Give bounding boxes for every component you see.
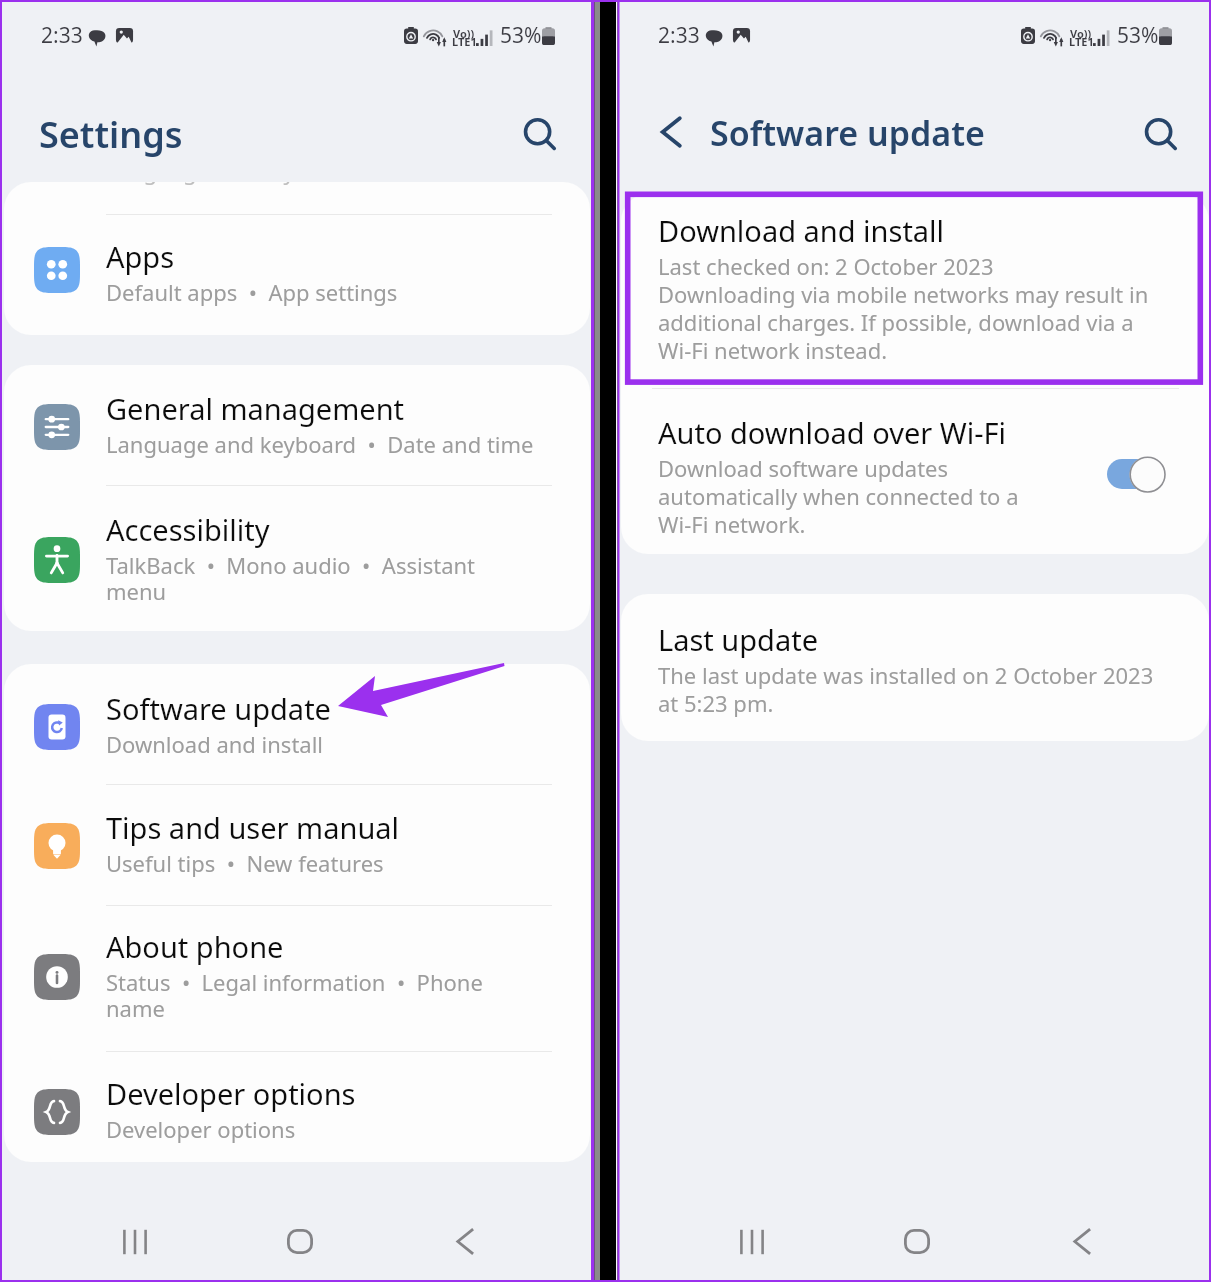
button[interactable]: [619, 387, 1209, 554]
staticText: 2:33: [658, 21, 700, 50]
staticText: Software update: [710, 110, 985, 156]
staticText: Apps: [106, 237, 175, 276]
staticText: Download and install: [658, 211, 945, 250]
staticText: The last update was installed on 2 Octob…: [658, 660, 1154, 718]
button[interactable]: Auto download over Wi-Fi toggle: [1103, 452, 1171, 498]
staticText: Useful tips • New features: [106, 848, 384, 878]
button[interactable]: [619, 194, 1209, 387]
staticText: 2:33: [41, 21, 83, 50]
button[interactable]: [621, 594, 1209, 741]
button[interactable]: Search: [1136, 110, 1188, 162]
staticText: LTE1: [452, 34, 477, 49]
button[interactable]: [2, 664, 592, 784]
staticText: Status • Legal information • Phone name: [106, 967, 483, 1024]
button[interactable]: Home: [266, 1195, 334, 1282]
button[interactable]: Search: [515, 110, 567, 162]
staticText: Developer options: [106, 1074, 356, 1113]
staticText: Accessibility: [106, 510, 270, 549]
staticText: LTE1: [1069, 34, 1094, 49]
button[interactable]: Back: [645, 106, 697, 158]
staticText: 53%: [500, 21, 542, 50]
staticText: Download software updates automatically …: [658, 453, 1019, 539]
staticText: Download and install: [106, 729, 324, 759]
staticText: Language and keyboard • Date and time: [106, 182, 534, 186]
button[interactable]: Recent apps: [101, 1195, 169, 1282]
button[interactable]: [2, 365, 592, 485]
button[interactable]: [2, 905, 592, 1051]
button[interactable]: Back: [431, 1195, 499, 1282]
staticText: 53%: [1117, 21, 1159, 50]
staticText: Language and keyboard • Date and time: [106, 429, 534, 459]
staticText: Last checked on: 2 October 2023 Download…: [658, 251, 1149, 365]
staticText: Developer options: [106, 1114, 296, 1144]
button[interactable]: [2, 1051, 592, 1162]
staticText: Settings: [39, 110, 183, 159]
staticText: TalkBack • Mono audio • Assistant menu: [106, 550, 476, 607]
staticText: Vo)): [453, 26, 475, 41]
staticText: Auto download over Wi-Fi: [658, 413, 1007, 452]
button[interactable]: [2, 485, 592, 631]
button[interactable]: [2, 784, 592, 905]
staticText: Vo)): [1070, 26, 1092, 41]
button[interactable]: [4, 182, 590, 335]
button[interactable]: Back: [1048, 1195, 1116, 1282]
staticText: Last update: [658, 620, 819, 659]
staticText: Default apps • App settings: [106, 277, 398, 307]
button[interactable]: Home: [883, 1195, 951, 1282]
staticText: Software update: [106, 689, 331, 728]
staticText: Tips and user manual: [106, 808, 400, 847]
button[interactable]: Recent apps: [718, 1195, 786, 1282]
staticText: General management: [106, 389, 405, 428]
staticText: About phone: [106, 927, 284, 966]
